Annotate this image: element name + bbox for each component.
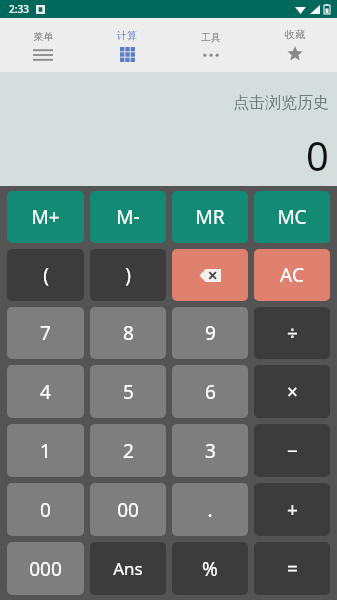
staticText: AC bbox=[280, 262, 304, 288]
button[interactable]: 4 bbox=[7, 365, 84, 418]
staticText: ÷ bbox=[287, 320, 298, 346]
button[interactable]: 3 bbox=[172, 424, 248, 477]
staticText: 5 bbox=[123, 379, 134, 405]
staticText: MC bbox=[277, 204, 307, 230]
button[interactable]: ÷ bbox=[254, 307, 330, 359]
staticText: 收藏 bbox=[285, 28, 305, 41]
button[interactable]: MC bbox=[254, 191, 330, 243]
button[interactable]: 点击浏览历史 bbox=[0, 72, 337, 186]
staticText: − bbox=[287, 438, 298, 464]
button[interactable]: 计算 bbox=[85, 18, 169, 72]
staticText: MR bbox=[195, 204, 225, 230]
staticText: 6 bbox=[205, 379, 216, 405]
button[interactable]: 菜单 bbox=[0, 18, 85, 72]
button[interactable]: 7 bbox=[7, 307, 84, 359]
staticText: 9 bbox=[205, 320, 216, 346]
button[interactable]: MR bbox=[172, 191, 248, 243]
button[interactable]: 1 bbox=[7, 424, 84, 477]
button[interactable]: M- bbox=[90, 191, 166, 243]
button[interactable]: ) bbox=[90, 249, 166, 301]
button[interactable]: Delete bbox=[172, 249, 248, 301]
staticText: 工具 bbox=[201, 31, 221, 44]
button[interactable]: 工具 bbox=[169, 18, 253, 72]
staticText: ) bbox=[125, 262, 131, 288]
staticText: % bbox=[202, 556, 218, 582]
button[interactable]: 00 bbox=[90, 483, 166, 536]
staticText: 00 bbox=[117, 497, 139, 523]
staticText: = bbox=[287, 556, 298, 582]
staticText: 8 bbox=[123, 320, 134, 346]
staticText: 2 bbox=[123, 438, 134, 464]
button[interactable]: = bbox=[254, 542, 330, 595]
staticText: . bbox=[207, 497, 213, 523]
button[interactable]: 收藏 bbox=[253, 18, 337, 72]
staticText: 计算 bbox=[117, 29, 137, 42]
staticText: M- bbox=[116, 204, 140, 230]
button[interactable]: − bbox=[254, 424, 330, 477]
staticText: ( bbox=[43, 262, 49, 288]
staticText: 4 bbox=[40, 379, 51, 405]
button[interactable]: + bbox=[254, 483, 330, 536]
staticText: 3 bbox=[205, 438, 216, 464]
button[interactable]: 9 bbox=[172, 307, 248, 359]
staticText: 000 bbox=[29, 556, 62, 582]
button[interactable]: M+ bbox=[7, 191, 84, 243]
button[interactable]: 5 bbox=[90, 365, 166, 418]
button[interactable]: × bbox=[254, 365, 330, 418]
button[interactable]: % bbox=[172, 542, 248, 595]
staticText: Ans bbox=[113, 557, 143, 580]
staticText: 0 bbox=[40, 497, 51, 523]
button[interactable]: 8 bbox=[90, 307, 166, 359]
button[interactable]: 6 bbox=[172, 365, 248, 418]
button[interactable]: Ans bbox=[90, 542, 166, 595]
button[interactable]: 2 bbox=[90, 424, 166, 477]
staticText: 菜单 bbox=[33, 30, 53, 43]
button[interactable]: 0 bbox=[7, 483, 84, 536]
button[interactable]: 000 bbox=[7, 542, 84, 595]
staticText: 0 bbox=[306, 128, 329, 182]
staticText: M+ bbox=[31, 204, 60, 230]
button[interactable]: AC bbox=[254, 249, 330, 301]
staticText: 1 bbox=[40, 438, 51, 464]
staticText: 7 bbox=[40, 320, 51, 346]
button[interactable]: . bbox=[172, 483, 248, 536]
staticText: 点击浏览历史 bbox=[233, 93, 329, 113]
staticText: × bbox=[287, 379, 298, 405]
button[interactable]: ( bbox=[7, 249, 84, 301]
staticText: 2:33 bbox=[9, 2, 29, 16]
staticText: + bbox=[287, 497, 298, 523]
